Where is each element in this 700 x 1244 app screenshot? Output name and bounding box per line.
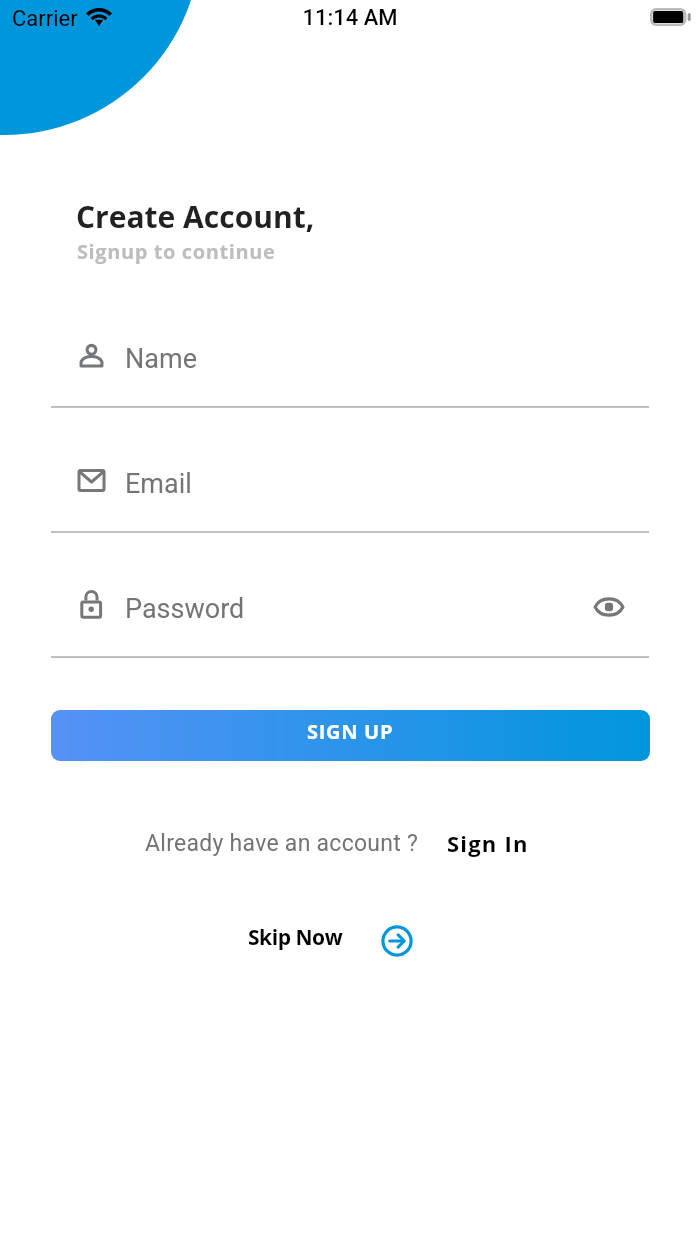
staticText: Password — [125, 593, 245, 625]
staticText: Email — [125, 468, 192, 500]
staticText: Carrier — [12, 6, 78, 32]
button[interactable]: Show password — [585, 584, 632, 630]
staticText: SIGN UP — [307, 718, 394, 745]
staticText: 11:14 AM — [302, 5, 398, 31]
button[interactable] — [0, 442, 700, 522]
button[interactable]: Sign In — [447, 826, 529, 860]
button[interactable]: SIGN UP — [51, 710, 650, 761]
staticText: Name — [125, 343, 197, 375]
button[interactable]: Skip Now — [248, 921, 413, 953]
button[interactable] — [0, 567, 700, 647]
staticText: Sign In — [447, 828, 529, 858]
staticText: Create Account, — [76, 196, 315, 237]
staticText: Already have an account ? — [145, 830, 419, 857]
staticText: Signup to continue — [77, 238, 276, 265]
staticText: Skip Now — [248, 923, 343, 952]
button[interactable] — [0, 317, 700, 397]
